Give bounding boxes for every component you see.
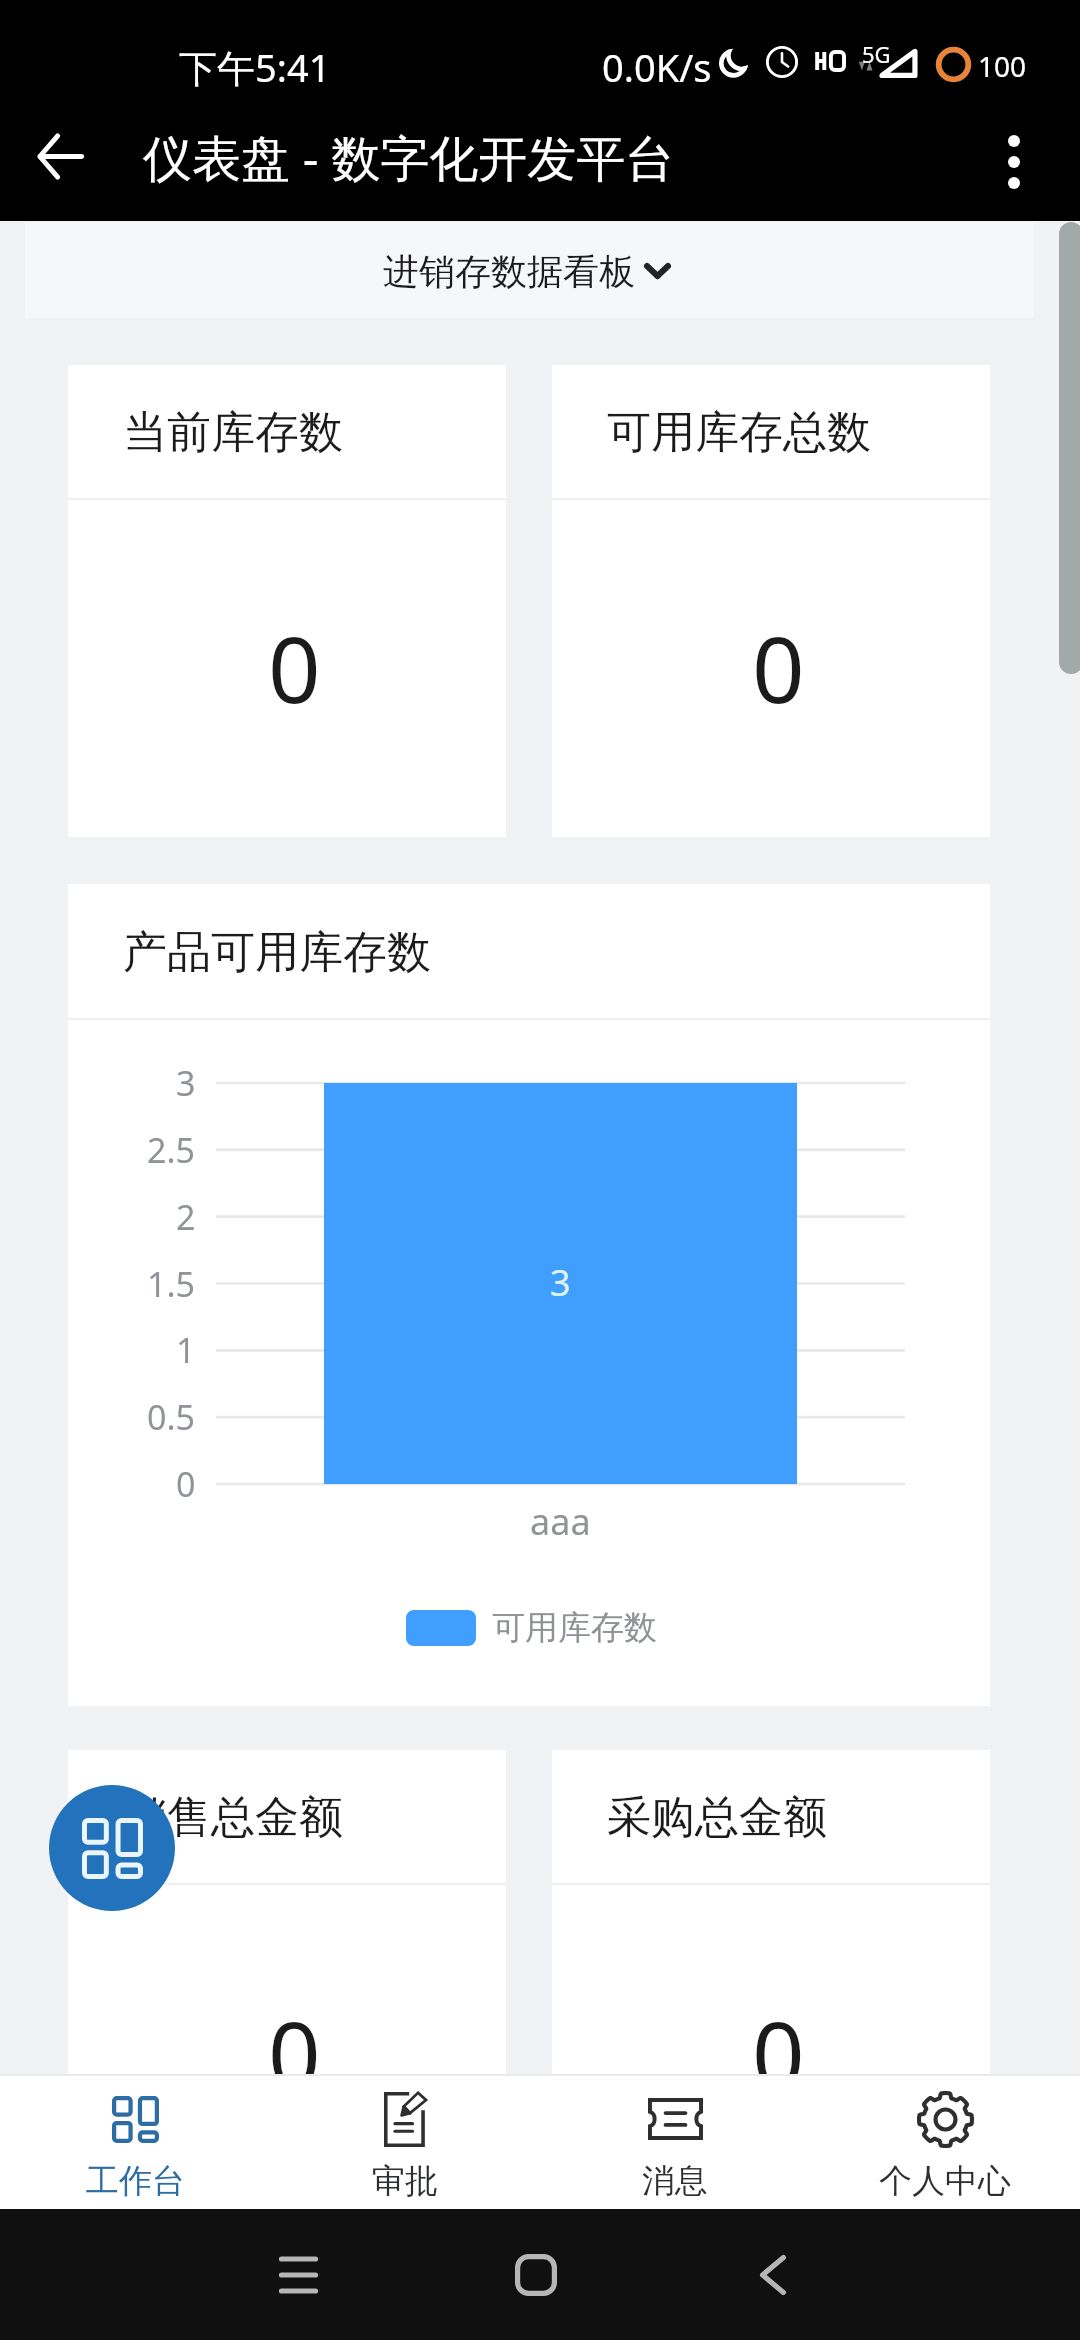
staticText: aaa bbox=[530, 1497, 591, 1546]
staticText: 1.5 bbox=[147, 1261, 196, 1307]
staticText: 0 bbox=[752, 605, 805, 730]
staticText: 工作台 bbox=[86, 2160, 185, 2202]
button[interactable]: 采购总金额 bbox=[552, 1750, 990, 2222]
staticText: 销售总金额 bbox=[123, 1790, 343, 1845]
button[interactable]: Back bbox=[698, 2209, 848, 2340]
staticText: 采购总金额 bbox=[607, 1790, 827, 1845]
button[interactable]: Recent apps bbox=[223, 2209, 373, 2340]
button[interactable]: 消息 bbox=[540, 2076, 810, 2209]
button[interactable]: Back bbox=[5, 101, 115, 211]
staticText: 下午5:41 bbox=[179, 41, 331, 93]
button[interactable]: 销售总金额 bbox=[68, 1750, 506, 2222]
staticText: 消息 bbox=[642, 2160, 708, 2202]
button[interactable]: 审批 bbox=[270, 2076, 540, 2209]
staticText: 3 bbox=[176, 1060, 196, 1106]
button[interactable]: Dashboard bbox=[49, 1785, 175, 1911]
staticText: 0.0K/s bbox=[602, 41, 712, 93]
staticText: 2 bbox=[176, 1194, 196, 1240]
staticText: 100 bbox=[978, 47, 1027, 85]
button[interactable]: 工作台 bbox=[0, 2076, 270, 2209]
button[interactable]: 个人中心 bbox=[810, 2076, 1080, 2209]
staticText: 个人中心 bbox=[879, 2160, 1011, 2202]
staticText: 可用库存数 bbox=[492, 1607, 657, 1649]
staticText: 0 bbox=[268, 1990, 321, 2115]
staticText: 0 bbox=[752, 1990, 805, 2115]
staticText: 0 bbox=[176, 1461, 196, 1507]
button[interactable]: 可用库存总数 bbox=[552, 365, 990, 837]
staticText: 仪表盘 - 数字化开发平台 bbox=[143, 124, 675, 191]
button[interactable]: 进销存数据看板 bbox=[25, 222, 1034, 318]
button[interactable]: 当前库存数 bbox=[68, 365, 506, 837]
staticText: 1 bbox=[176, 1327, 196, 1373]
staticText: 可用库存总数 bbox=[607, 405, 871, 460]
button[interactable]: Home bbox=[461, 2209, 611, 2340]
staticText: 5G bbox=[862, 39, 891, 69]
staticText: 进销存数据看板 bbox=[383, 249, 635, 294]
staticText: 0.5 bbox=[147, 1394, 196, 1440]
staticText: 审批 bbox=[372, 2160, 438, 2202]
staticText: 0 bbox=[268, 605, 321, 730]
staticText: 2.5 bbox=[147, 1127, 196, 1173]
staticText: 产品可用库存数 bbox=[123, 925, 431, 980]
staticText: 当前库存数 bbox=[123, 405, 343, 460]
button[interactable]: More options bbox=[959, 107, 1069, 217]
staticText: 3 bbox=[550, 1258, 571, 1307]
button[interactable]: 产品可用库存数 bbox=[68, 884, 990, 1706]
